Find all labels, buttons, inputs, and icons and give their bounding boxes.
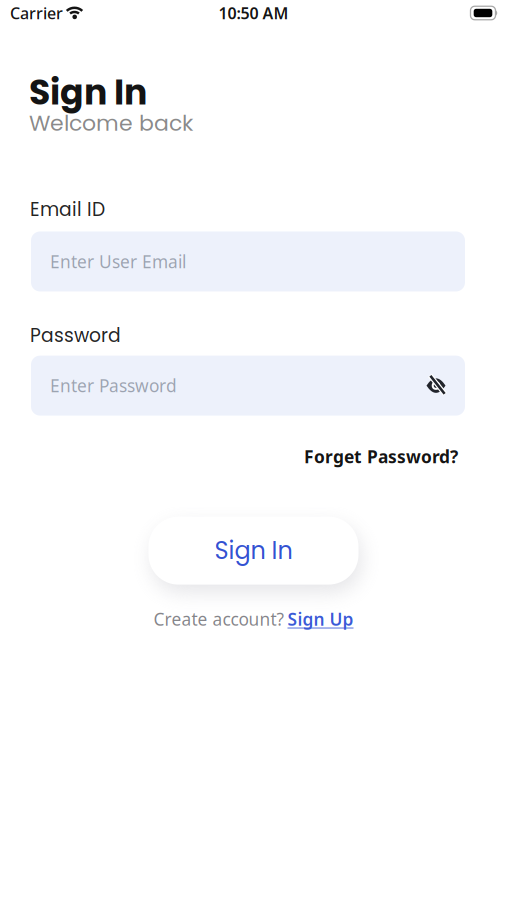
button[interactable]: Sign In	[148, 517, 358, 585]
staticText: Sign In	[214, 534, 292, 567]
staticText: Forget Password?	[304, 445, 458, 468]
staticText: Sign In	[29, 68, 147, 116]
staticText: Carrier	[10, 2, 63, 24]
staticText: Enter Password	[50, 374, 177, 397]
button[interactable]: Sign Up	[287, 608, 353, 631]
button[interactable]: Forget Password?	[304, 445, 458, 468]
staticText: Password	[30, 322, 121, 349]
staticText: Email ID	[30, 196, 105, 222]
staticText: Welcome back	[29, 107, 193, 138]
button[interactable]: Show password	[426, 377, 446, 395]
staticText: 10:50 AM	[218, 2, 288, 24]
staticText: Enter User Email	[50, 250, 186, 273]
staticText: Sign Up	[287, 608, 353, 631]
staticText: Create account?	[153, 608, 284, 631]
